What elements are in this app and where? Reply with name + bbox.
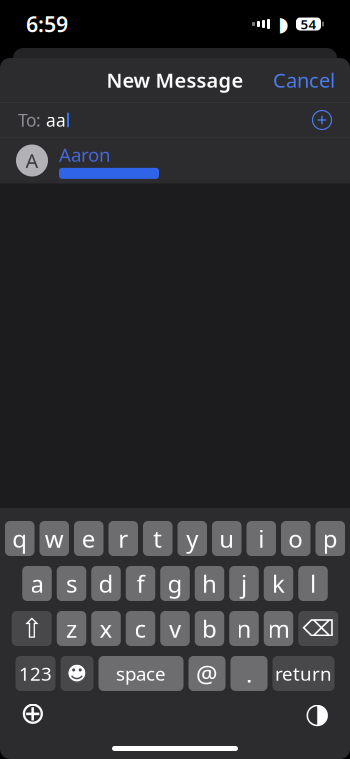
staticText: Cancel [273,67,335,93]
button[interactable]: x [91,611,121,646]
staticText: g [167,568,182,599]
staticText: d [98,568,113,599]
staticText: ⇧ [21,613,43,644]
button[interactable]: return [272,656,334,691]
staticText: 6:59 [26,10,68,38]
staticText: j [241,568,247,599]
button[interactable]: f [126,566,155,601]
staticText: ⊕ [20,696,46,730]
staticText: c [134,613,146,644]
staticText: a [30,568,43,599]
button[interactable]: n [229,611,259,646]
staticText: 54 [300,15,316,33]
button[interactable]: z [57,611,86,646]
staticText: z [66,613,77,644]
button[interactable]: d [91,566,121,601]
staticText: A [25,147,38,174]
staticText: b [202,613,217,644]
button[interactable]: Switch keyboard [15,695,51,731]
staticText: k [272,568,285,599]
button[interactable]: Add contact [305,103,339,137]
button[interactable]: w [39,521,69,556]
button[interactable]: e [74,521,103,556]
button[interactable]: g [160,566,190,601]
staticText: aa [41,108,66,131]
staticText: return [275,661,332,686]
staticText: space [116,661,166,686]
staticText: r [118,523,128,554]
staticText: v [169,613,181,644]
staticText: u [219,523,234,554]
button[interactable]: Dictate [299,695,335,731]
staticText: 123 [19,661,52,686]
button[interactable]: a [22,566,52,601]
button[interactable]: t [143,521,172,556]
staticText: i [258,523,264,554]
staticText: e [82,523,96,554]
staticText: n [236,613,251,644]
button[interactable]: b [195,611,224,646]
staticText: Aaron [59,142,111,167]
staticText: o [288,523,303,554]
staticText: To: [18,108,41,131]
staticText: ⌫ [302,616,334,641]
staticText: l [310,568,316,599]
button[interactable]: l [298,566,328,601]
staticText: w [45,523,64,554]
staticText: ◗ [278,13,289,35]
button[interactable]: v [160,611,190,646]
button[interactable]: o [281,521,310,556]
button[interactable]: Delete [298,611,338,646]
button[interactable]: Cancel [258,56,350,104]
button[interactable]: space [98,656,183,691]
staticText: New Message [106,67,243,93]
button[interactable]: p [315,521,345,556]
button[interactable]: A [0,138,350,183]
button[interactable]: c [126,611,155,646]
button[interactable]: . [230,656,267,691]
staticText: h [202,568,217,599]
staticText: @ [196,658,218,689]
staticText: p [323,523,338,554]
button[interactable]: i [246,521,276,556]
button[interactable]: q [5,521,34,556]
button[interactable]: m [264,611,293,646]
button[interactable]: k [264,566,293,601]
staticText: q [12,523,27,554]
staticText: ☺ [65,661,89,686]
staticText: m [267,613,289,644]
button[interactable]: @ [188,656,225,691]
staticText: ◑ [305,697,329,729]
button[interactable]: y [177,521,207,556]
button[interactable]: j [229,566,259,601]
button[interactable]: 123 [15,656,55,691]
button[interactable]: h [195,566,224,601]
button[interactable]: r [108,521,138,556]
staticText: f [136,568,144,599]
button[interactable]: u [212,521,241,556]
button[interactable]: Emoji [60,656,93,691]
button[interactable]: s [57,566,86,601]
staticText: s [66,568,77,599]
staticText: y [186,523,198,554]
staticText: t [153,523,162,554]
button[interactable]: Shift [12,611,52,646]
staticText: . [246,658,252,689]
staticText: x [99,613,112,644]
